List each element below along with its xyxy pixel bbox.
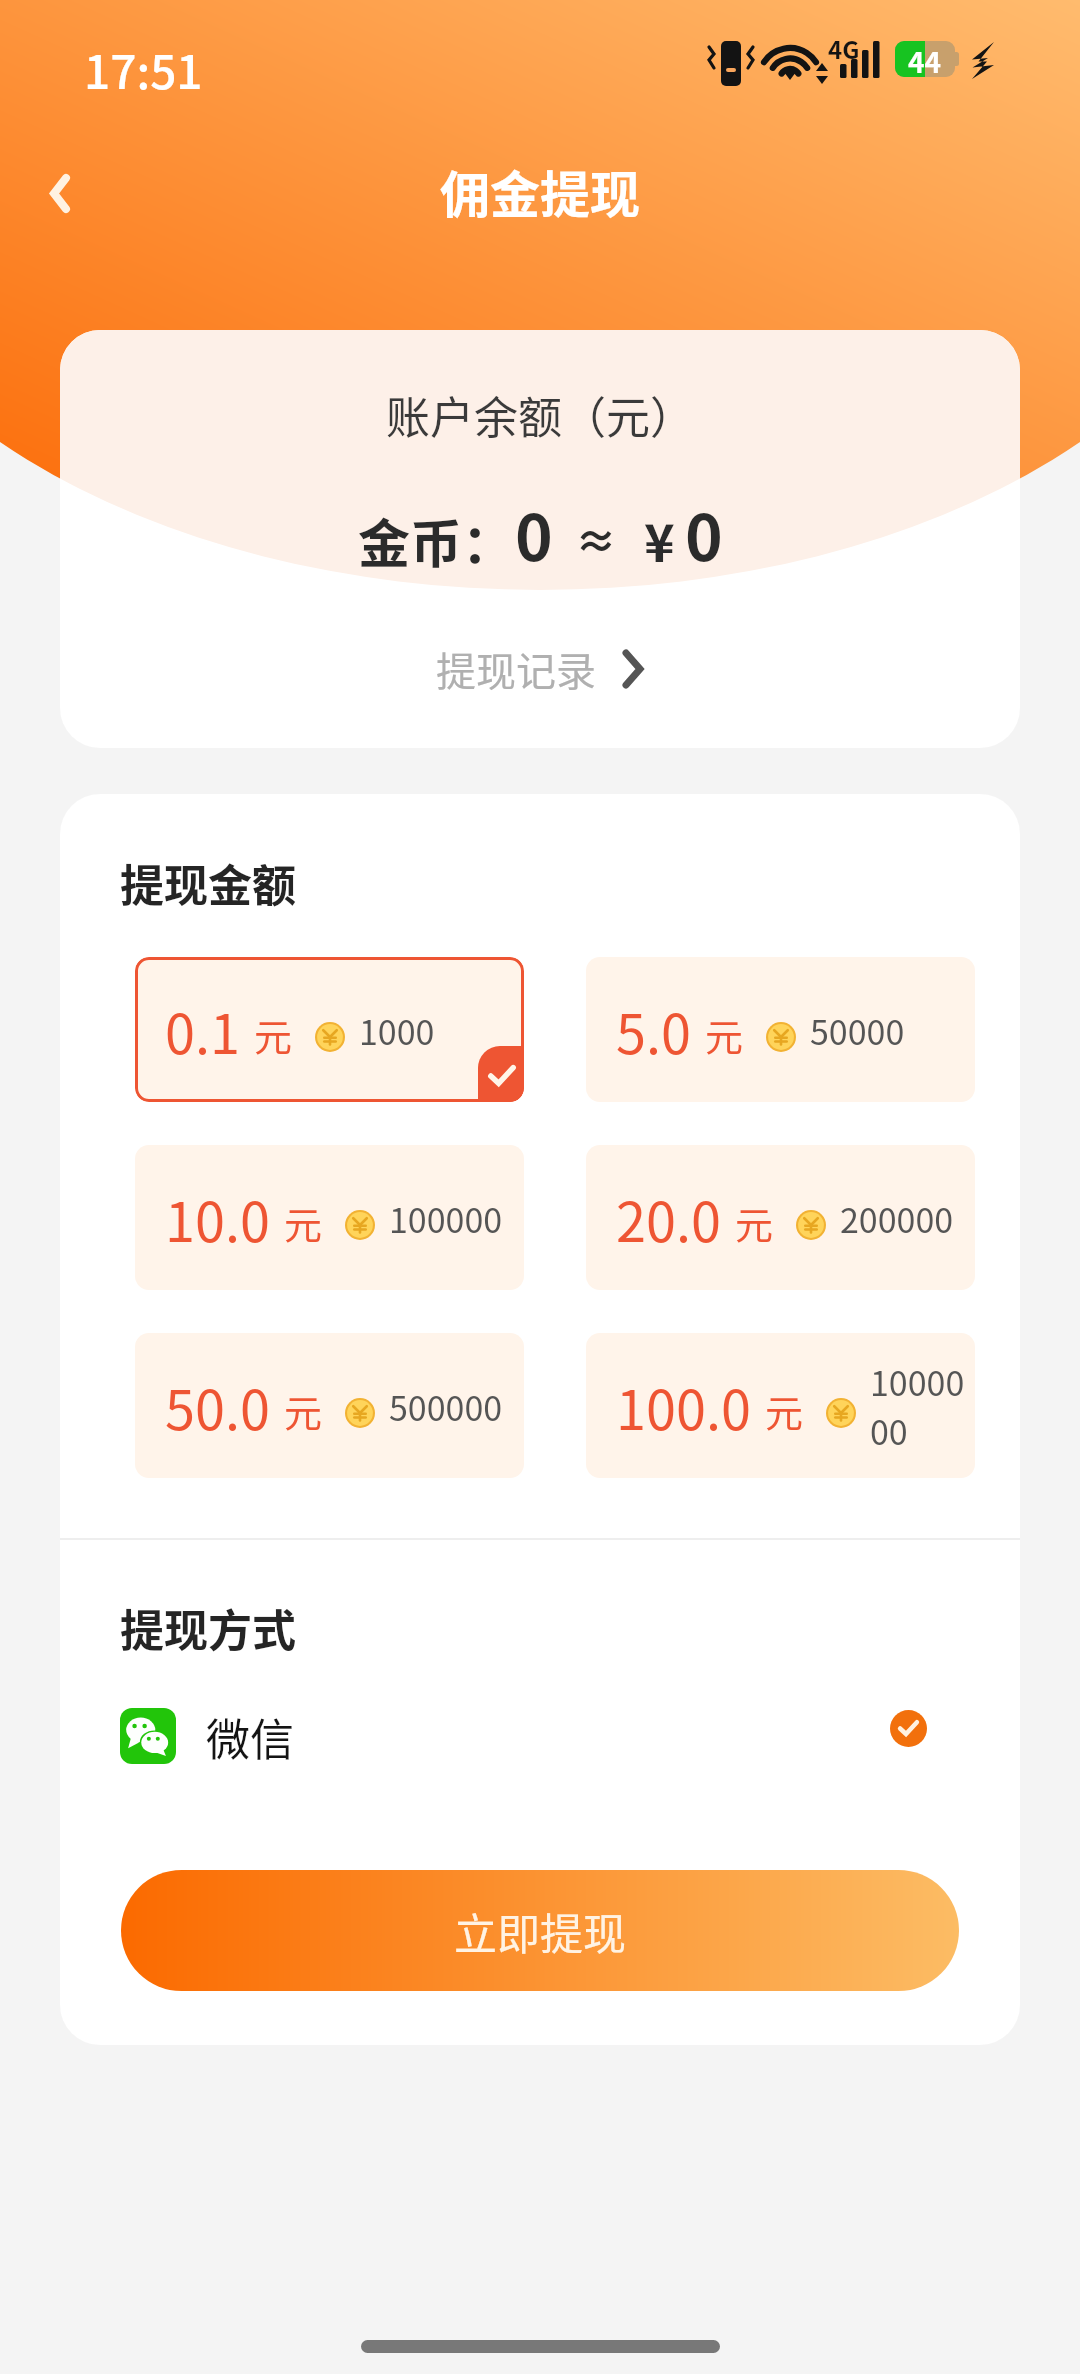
- staticText: 200000: [840, 1194, 954, 1243]
- staticText: 元: [254, 1007, 293, 1062]
- staticText: 100000: [389, 1194, 503, 1243]
- staticText: 10.0: [165, 1179, 270, 1257]
- button[interactable]: Back: [24, 157, 96, 229]
- button[interactable]: 20.0: [586, 1145, 975, 1290]
- staticText: 元: [284, 1383, 323, 1438]
- staticText: 20.0: [616, 1179, 721, 1257]
- staticText: 金币：: [358, 503, 515, 578]
- other: Status icons: [700, 30, 1010, 96]
- staticText: 1000: [359, 1006, 435, 1055]
- staticText: 44: [908, 41, 942, 77]
- staticText: 0.1: [165, 991, 240, 1069]
- staticText: 5.0: [616, 991, 691, 1069]
- staticText: ≈: [575, 508, 618, 569]
- button[interactable]: 50.0: [135, 1333, 524, 1478]
- staticText: 账户余额（元）: [386, 383, 694, 447]
- staticText: 50000: [810, 1006, 905, 1055]
- button[interactable]: 100.0: [586, 1333, 975, 1478]
- staticText: 微信: [206, 1705, 294, 1769]
- button[interactable]: 微信: [120, 1704, 927, 1768]
- button[interactable]: 立即提现: [121, 1870, 959, 1991]
- staticText: 0: [515, 487, 553, 580]
- staticText: 100.0: [616, 1367, 751, 1445]
- button[interactable]: 10.0: [135, 1145, 524, 1290]
- button[interactable]: 5.0: [586, 957, 975, 1102]
- staticText: 提现方式: [120, 1596, 296, 1660]
- button[interactable]: 0.1: [135, 957, 524, 1102]
- staticText: 元: [284, 1195, 323, 1250]
- staticText: ¥: [644, 502, 675, 577]
- staticText: 0: [685, 487, 723, 580]
- staticText: 17:51: [84, 36, 203, 103]
- staticText: 10000 00: [870, 1357, 965, 1455]
- staticText: 提现记录: [436, 640, 596, 698]
- staticText: 元: [735, 1195, 774, 1250]
- staticText: 元: [705, 1007, 744, 1062]
- staticText: 佣金提现: [440, 155, 640, 227]
- staticText: 元: [765, 1383, 804, 1438]
- staticText: 提现金额: [120, 851, 296, 915]
- staticText: 500000: [389, 1382, 503, 1431]
- button[interactable]: 提现记录: [436, 640, 644, 698]
- staticText: 50.0: [165, 1367, 270, 1445]
- staticText: 立即提现: [454, 1900, 626, 1962]
- staticText: 4G: [828, 31, 860, 66]
